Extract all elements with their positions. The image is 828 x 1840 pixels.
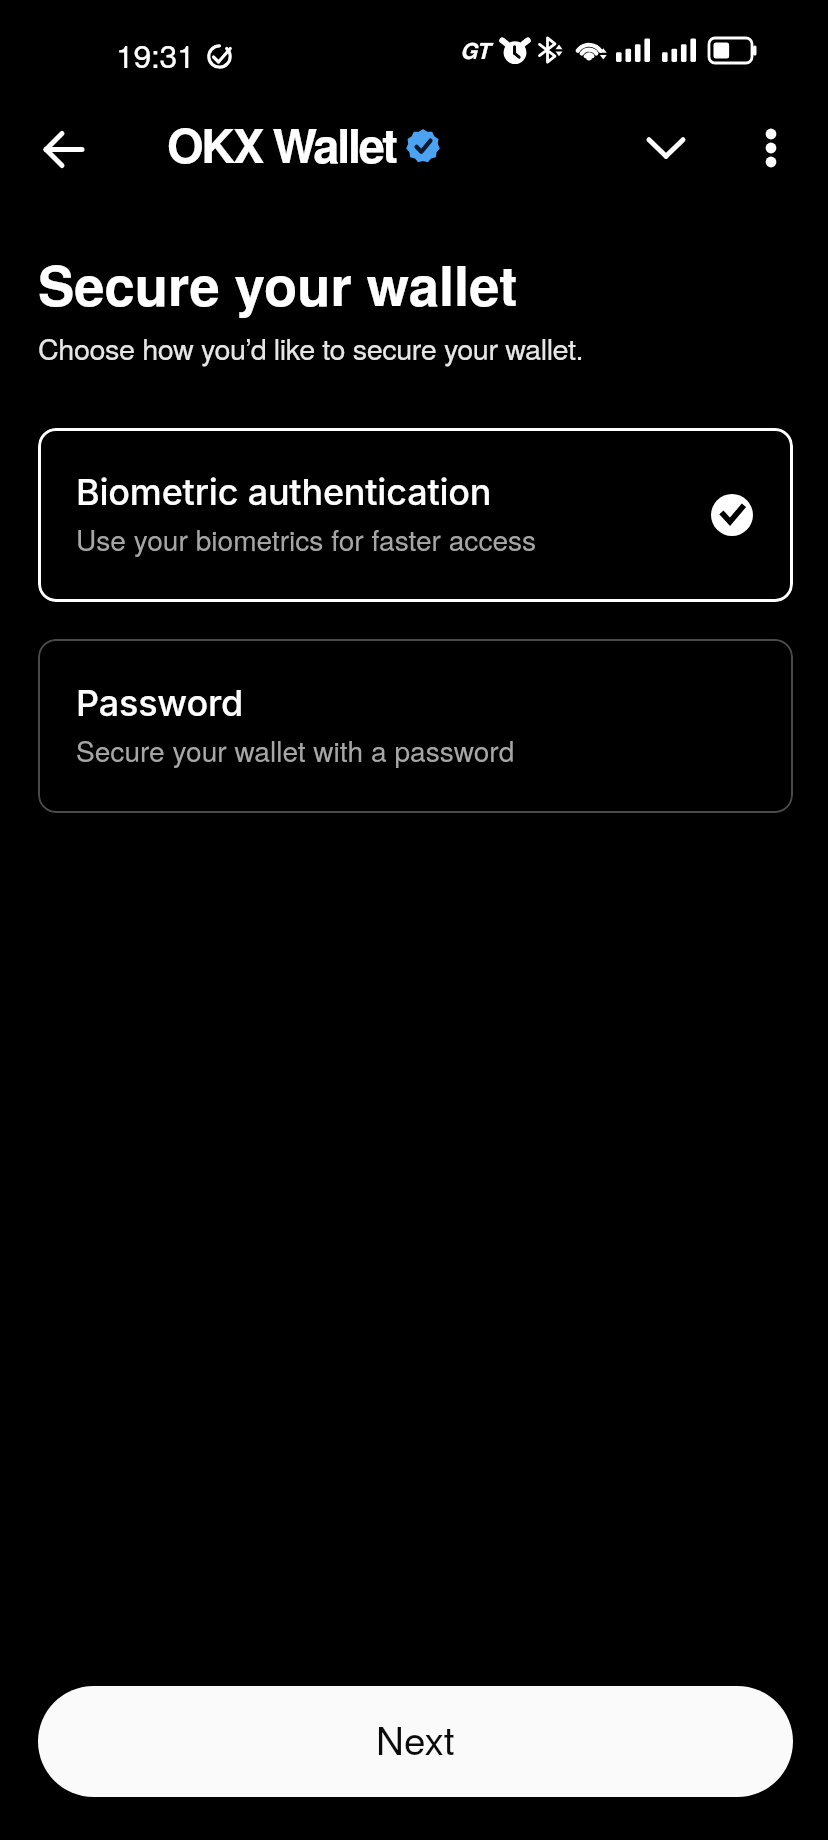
button[interactable]: Next	[38, 1686, 793, 1797]
staticText: Secure your wallet	[38, 245, 518, 323]
button[interactable]: More options	[737, 114, 805, 182]
staticText: OKX Wallet	[167, 110, 396, 177]
button[interactable]: Biometric authentication	[38, 428, 793, 602]
staticText: Biometric authentication	[76, 470, 492, 514]
staticText: Secure your wallet with a password	[76, 730, 515, 770]
staticText: 19:31	[116, 31, 195, 77]
button[interactable]: Expand	[628, 110, 704, 186]
staticText: Use your biometrics for faster access	[76, 519, 537, 559]
staticText: Next	[376, 1711, 455, 1766]
button[interactable]: Password	[38, 639, 793, 813]
staticText: Password	[76, 681, 244, 725]
staticText: Choose how you’d like to secure your wal…	[38, 327, 584, 368]
button[interactable]: Back	[26, 110, 102, 186]
staticText: GT	[460, 34, 490, 66]
